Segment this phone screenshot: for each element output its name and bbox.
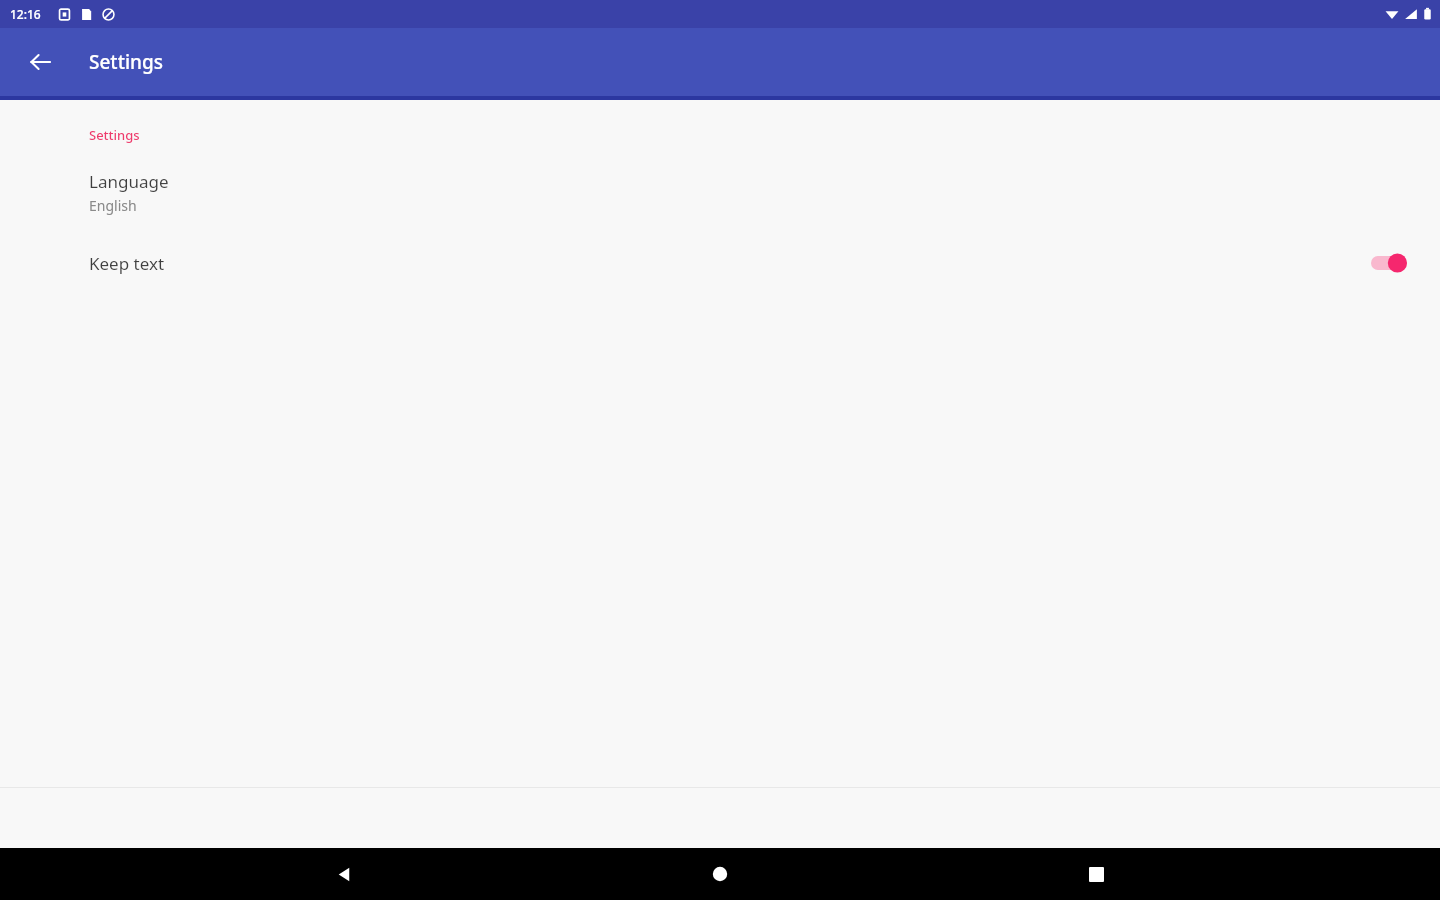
staticText: Settings <box>89 49 163 75</box>
button[interactable]: Back <box>312 848 376 900</box>
staticText: 12:16 <box>10 6 41 22</box>
button[interactable]: Language <box>0 168 1440 217</box>
button[interactable]: Home <box>688 848 752 900</box>
button[interactable]: Recent apps <box>1064 848 1128 900</box>
button[interactable]: Keep text <box>0 243 1440 283</box>
button[interactable]: Back <box>17 38 65 86</box>
staticText: Keep text <box>89 252 1371 275</box>
staticText: English <box>89 196 137 215</box>
staticText: Language <box>89 170 169 193</box>
staticText: Settings <box>89 126 140 144</box>
